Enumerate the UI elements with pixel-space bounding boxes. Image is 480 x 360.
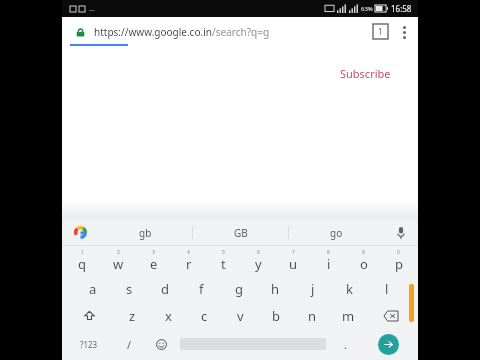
staticText: https://www.google.co.in <box>94 25 212 39</box>
button[interactable]: Switch tabs <box>373 24 388 39</box>
button[interactable]: 7 <box>276 248 311 275</box>
staticText: v <box>237 307 244 325</box>
staticText: k <box>346 280 353 298</box>
staticText: i <box>327 255 331 273</box>
staticText: w <box>113 255 124 273</box>
staticText: 4 <box>187 249 190 256</box>
button[interactable]: . <box>329 329 361 359</box>
staticText: go <box>330 226 343 240</box>
staticText: GB <box>234 226 248 240</box>
staticText: 5 <box>222 249 225 256</box>
button[interactable]: / <box>113 329 145 359</box>
staticText: o <box>360 255 368 273</box>
staticText: 9 <box>362 249 365 256</box>
staticText: y <box>255 255 262 273</box>
button[interactable]: x <box>150 302 186 329</box>
button[interactable]: c <box>186 302 222 329</box>
staticText: r <box>186 255 192 273</box>
button[interactable]: g <box>220 275 257 302</box>
staticText: 7 <box>292 249 295 256</box>
staticText: f <box>199 280 204 298</box>
button[interactable]: v <box>222 302 258 329</box>
button[interactable]: GB <box>193 219 288 246</box>
button[interactable]: Shift <box>64 302 114 329</box>
staticText: 1 <box>81 249 84 256</box>
staticText: t <box>221 255 226 273</box>
staticText: 16:58 <box>391 3 412 14</box>
staticText: d <box>161 280 169 298</box>
button[interactable]: z <box>114 302 150 329</box>
staticText: 1 <box>378 26 383 37</box>
button[interactable]: a <box>75 275 111 302</box>
staticText: / <box>127 337 132 352</box>
staticText: 0 <box>397 249 400 256</box>
staticText: /search?q=g <box>212 25 270 39</box>
staticText: 63% <box>361 5 373 13</box>
button[interactable]: Go <box>378 334 399 355</box>
button[interactable]: s <box>111 275 147 302</box>
staticText: c <box>201 307 208 325</box>
button[interactable]: h <box>257 275 294 302</box>
button[interactable]: ?123 <box>65 329 113 359</box>
staticText: 3 <box>152 249 155 256</box>
staticText: ... <box>89 4 95 14</box>
staticText: 8 <box>327 249 330 256</box>
button[interactable]: Backspace <box>366 302 416 329</box>
button[interactable]: https://www.google.co.in <box>94 25 369 39</box>
button[interactable]: 1 <box>64 248 100 275</box>
staticText: h <box>271 280 280 298</box>
button[interactable]: j <box>294 275 331 302</box>
staticText: z <box>129 307 136 325</box>
button[interactable]: gb <box>98 219 192 246</box>
staticText: a <box>89 280 97 298</box>
staticText: n <box>308 307 317 325</box>
button[interactable]: d <box>147 275 183 302</box>
button[interactable]: More options <box>396 24 412 40</box>
button[interactable]: m <box>330 302 366 329</box>
button[interactable]: 9 <box>346 248 381 275</box>
button[interactable]: Voice input <box>384 219 418 246</box>
button[interactable]: 4 <box>171 248 206 275</box>
button[interactable]: 5 <box>206 248 241 275</box>
button[interactable]: Emoji <box>145 329 177 359</box>
button[interactable]: 8 <box>311 248 346 275</box>
button[interactable]: Site information, secure <box>72 24 88 40</box>
button[interactable]: go <box>289 219 384 246</box>
button[interactable]: 6 <box>241 248 276 275</box>
staticText: u <box>289 255 298 273</box>
button[interactable]: n <box>294 302 330 329</box>
staticText: ?123 <box>80 339 98 350</box>
button[interactable]: 3 <box>136 248 171 275</box>
button[interactable]: Google search <box>62 219 98 246</box>
button[interactable]: b <box>258 302 294 329</box>
staticText: . <box>344 337 347 352</box>
button[interactable]: k <box>331 275 368 302</box>
staticText: 2 <box>117 249 120 256</box>
staticText: q <box>78 255 86 273</box>
staticText: x <box>165 307 172 325</box>
staticText: m <box>342 307 355 325</box>
staticText: gb <box>139 226 152 240</box>
staticText: p <box>395 255 403 273</box>
staticText: 6 <box>257 249 260 256</box>
button[interactable]: Subscribe <box>340 66 391 81</box>
button[interactable]: l <box>368 275 405 302</box>
staticText: e <box>150 255 158 273</box>
button[interactable]: f <box>183 275 220 302</box>
staticText: s <box>126 280 133 298</box>
staticText: b <box>272 307 280 325</box>
staticText: j <box>311 280 315 298</box>
staticText: g <box>235 280 243 298</box>
staticText: l <box>385 280 389 298</box>
button[interactable]: 2 <box>100 248 136 275</box>
button[interactable]: 0 <box>381 248 416 275</box>
